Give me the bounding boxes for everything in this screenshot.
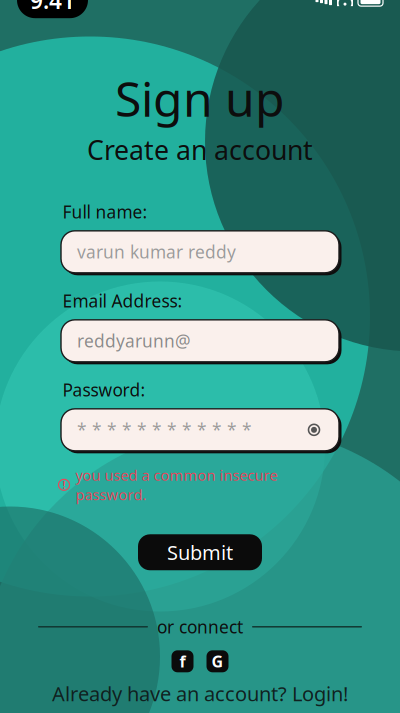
button[interactable]: * * * * * * * * * * * *: [58, 406, 341, 453]
staticText: Submit: [167, 539, 233, 566]
staticText: varun kumar reddy: [77, 240, 236, 263]
staticText: f: [179, 651, 185, 672]
button[interactable]: Submit: [138, 534, 262, 570]
staticText: Sign up: [115, 66, 285, 130]
button[interactable]: Continue with Google: [206, 650, 228, 672]
staticText: G: [211, 651, 223, 672]
button[interactable]: Already have an account? Login!: [52, 680, 348, 707]
staticText: Email Address:: [62, 289, 182, 312]
staticText: or connect: [157, 615, 243, 638]
staticText: Already have an account? Login!: [52, 680, 348, 707]
staticText: * * * * * * * * * * * *: [77, 418, 252, 441]
staticText: !: [62, 478, 65, 492]
staticText: reddyarunn@: [77, 329, 191, 352]
button[interactable]: Continue with Facebook: [171, 650, 193, 672]
staticText: Create an account: [87, 132, 313, 167]
button[interactable]: varun kumar reddy: [58, 228, 341, 275]
staticText: Full name:: [62, 200, 147, 223]
staticText: 9:41: [30, 0, 75, 15]
button[interactable]: reddyarunn@: [58, 317, 341, 364]
staticText: Password:: [62, 378, 145, 401]
staticText: you used a common insecure password.: [75, 465, 277, 504]
